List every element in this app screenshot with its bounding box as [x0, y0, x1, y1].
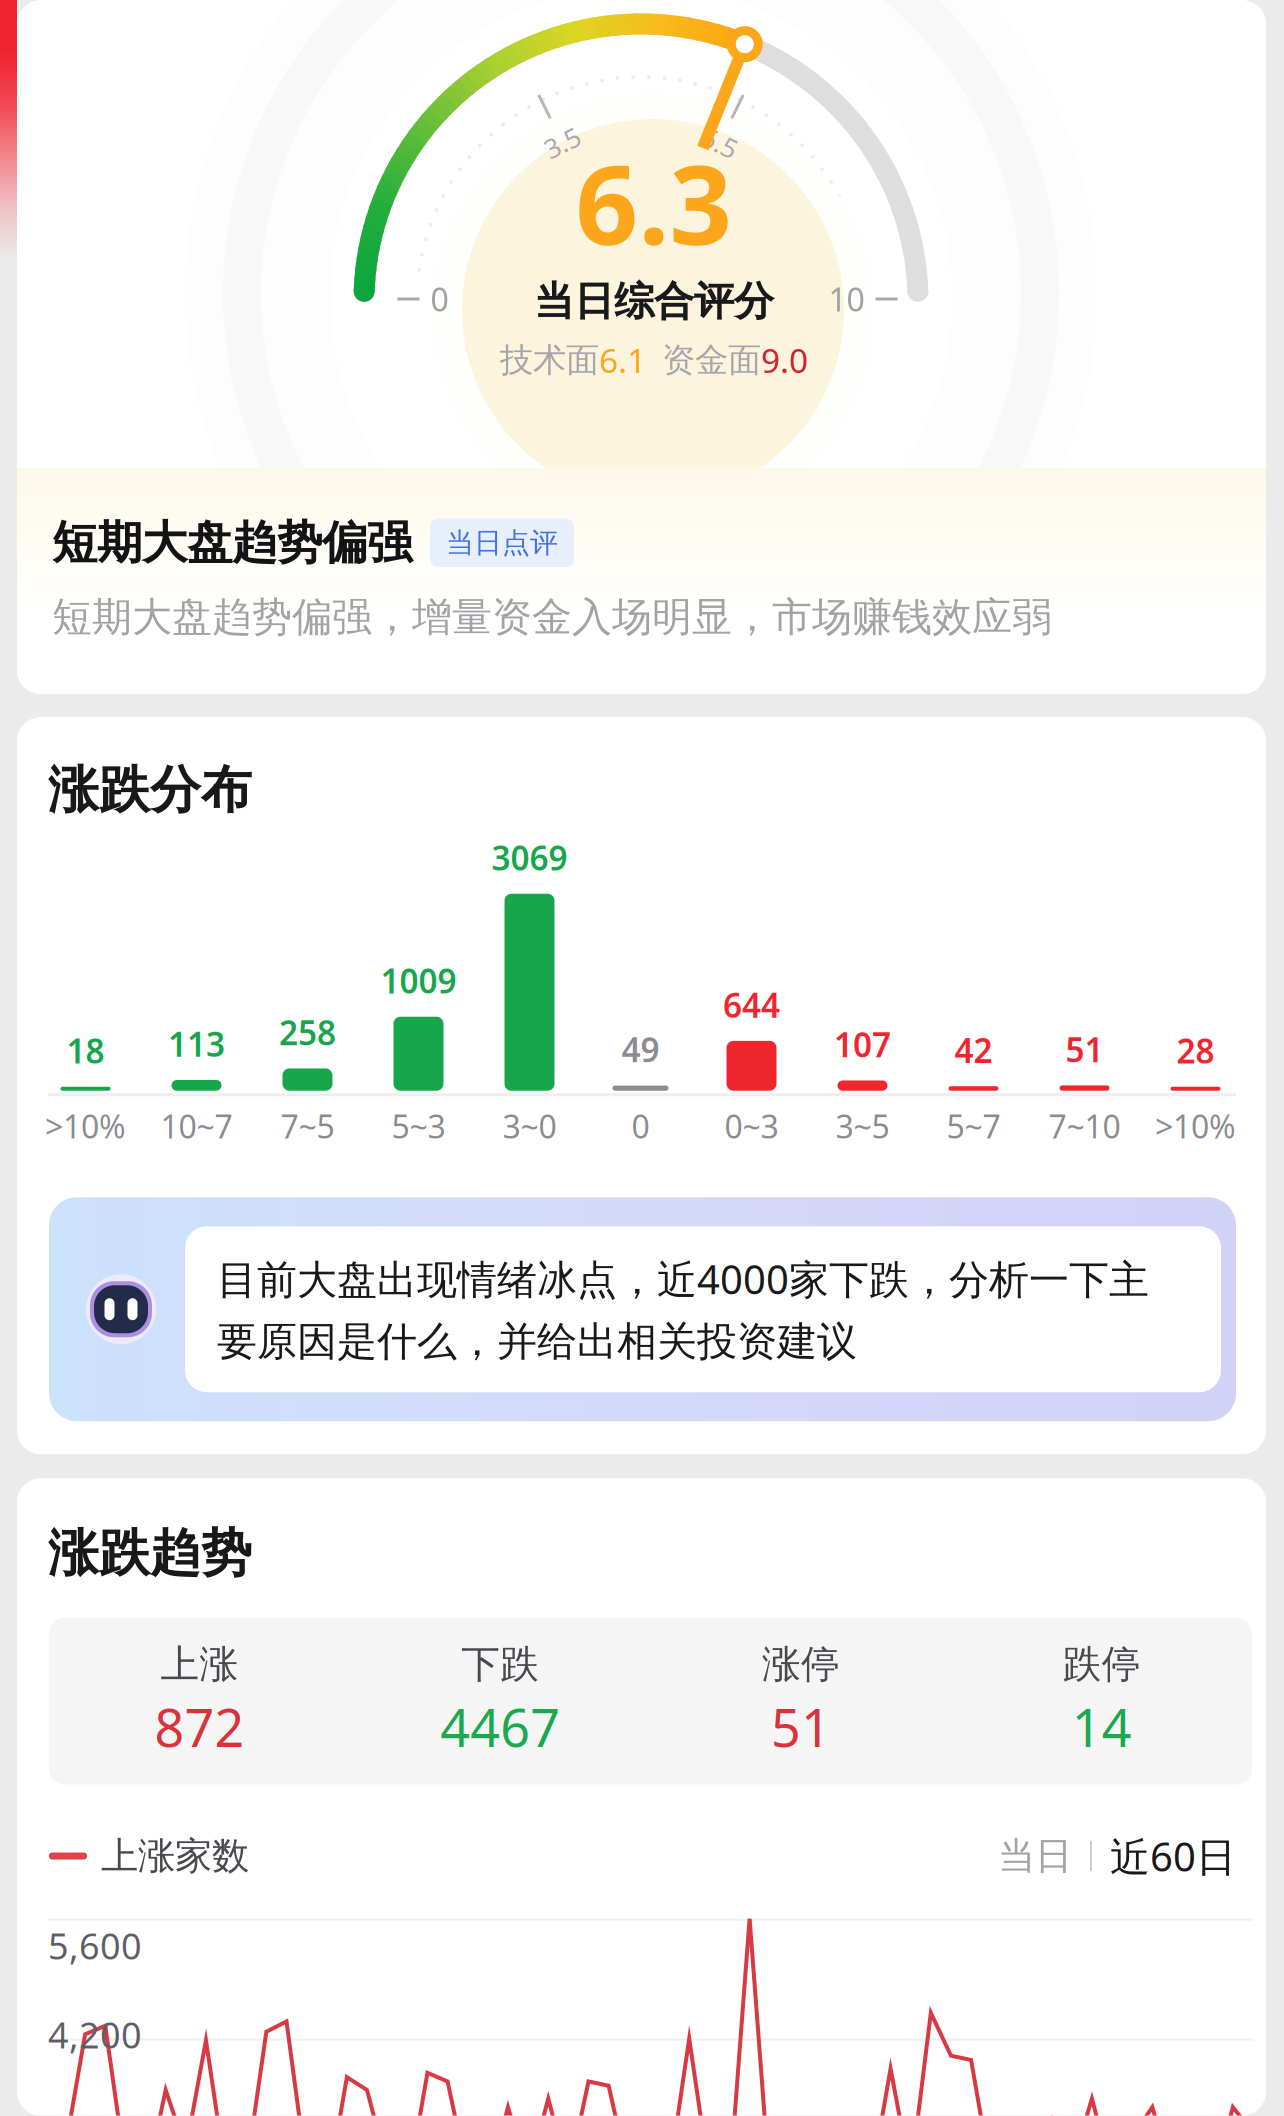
staticText: 5,600 [48, 1922, 142, 1969]
staticText: 当日 [998, 1833, 1072, 1879]
staticText: 当日综合评分 [534, 277, 774, 326]
staticText: 18 [66, 1028, 104, 1073]
staticText: >10% [45, 1105, 126, 1147]
staticText: 短期大盘趋势偏强 [52, 515, 412, 571]
staticText: 7~5 [280, 1105, 334, 1147]
staticText: 258 [279, 1010, 336, 1054]
staticText: 4,200 [48, 2011, 142, 2058]
staticText: 当日点评 [446, 526, 558, 560]
staticText: 上涨家数 [101, 1833, 249, 1879]
staticText: 51 [1065, 1027, 1103, 1071]
staticText: 3069 [491, 835, 567, 880]
staticText: 3~0 [502, 1105, 556, 1147]
staticText: 5~7 [946, 1105, 1000, 1147]
staticText: 跌停 [1063, 1641, 1141, 1688]
staticText: 目前大盘出现情绪冰点，近4000家下跌，分析一下主 [217, 1252, 1149, 1305]
staticText: 5~3 [391, 1105, 445, 1147]
staticText: 3~5 [835, 1105, 889, 1147]
staticText: 6.5 [701, 125, 738, 160]
staticText: 3.5 [544, 125, 581, 160]
staticText: 6.1 [599, 338, 646, 382]
staticText: 51 [771, 1692, 831, 1761]
button[interactable]: 目前大盘出现情绪冰点，近4000家下跌，分析一下主 [49, 1197, 1236, 1421]
staticText: 0~3 [724, 1105, 778, 1147]
staticText: 技术面 [500, 340, 599, 381]
staticText: 上涨 [160, 1641, 238, 1688]
staticText: 10 [828, 278, 864, 320]
staticText: 涨跌分布 [48, 759, 252, 821]
staticText: 9.0 [761, 338, 808, 382]
staticText: 872 [154, 1692, 244, 1761]
staticText: 42 [954, 1028, 992, 1072]
staticText: 近60日 [1110, 1829, 1236, 1883]
staticText: 资金面 [662, 340, 761, 381]
staticText: 644 [723, 983, 780, 1027]
staticText: 4467 [440, 1692, 560, 1761]
staticText: 短期大盘趋势偏强，增量资金入场明显，市场赚钱效应弱 [52, 593, 1052, 642]
staticText: 0 [430, 278, 448, 320]
staticText: 涨停 [762, 1641, 840, 1688]
staticText: >10% [1155, 1105, 1236, 1147]
staticText: 6.3 [575, 130, 732, 275]
staticText: 49 [621, 1027, 659, 1072]
staticText: 14 [1072, 1692, 1132, 1761]
staticText: 0 [631, 1105, 649, 1147]
staticText: 113 [168, 1022, 225, 1066]
staticText: 10~7 [160, 1105, 232, 1147]
staticText: 107 [834, 1022, 891, 1066]
staticText: 1009 [380, 958, 456, 1003]
staticText: 7~10 [1048, 1105, 1120, 1147]
staticText: 28 [1176, 1028, 1214, 1073]
staticText: 下跌 [461, 1641, 539, 1688]
staticText: 涨跌趋势 [48, 1522, 252, 1584]
staticText: 要原因是什么，并给出相关投资建议 [217, 1317, 857, 1366]
